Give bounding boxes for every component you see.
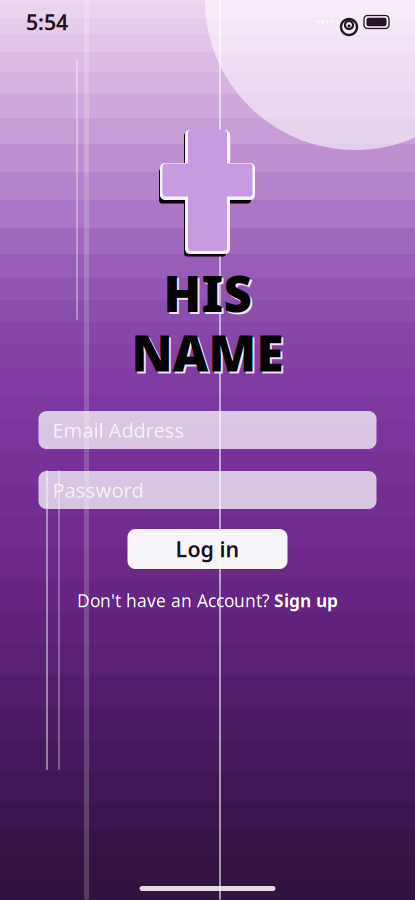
button[interactable]: Email Address [38,411,376,449]
button[interactable]: Password [38,471,376,509]
staticText: NAME [131,319,283,385]
staticText: HIS [163,260,251,325]
staticText: HIS [165,262,253,327]
staticText: Password [52,477,143,503]
staticText: NAME [133,321,285,387]
button[interactable]: Don't have an Account? [69,585,346,616]
staticText: 5:54 [26,8,68,36]
staticText: Don't have an Account? [77,589,270,612]
button[interactable]: Log in [127,529,287,569]
staticText: Sign up [274,589,338,612]
staticText: Log in [175,535,239,563]
staticText: Email Address [52,417,184,443]
